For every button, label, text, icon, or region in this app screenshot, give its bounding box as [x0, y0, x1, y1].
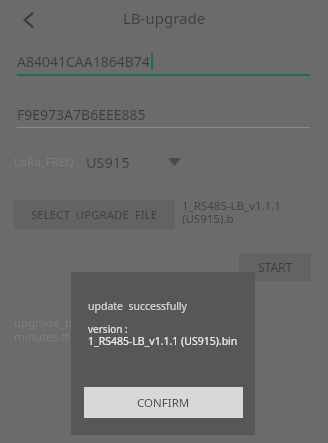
- staticText: START: [258, 259, 293, 275]
- staticText: 1_RS485-LB_v1.1.1 (US915).bin: [88, 334, 238, 348]
- button[interactable]: CONFIRM: [84, 387, 243, 418]
- staticText: SELECT UPGRADE FILE: [31, 207, 158, 223]
- staticText: update successfully: [88, 299, 187, 313]
- staticText: upgrade_time may take a few minutes ff t…: [14, 315, 328, 344]
- staticText: 1_RS485-LB_v1.1.1 (US915).b in: [182, 198, 328, 227]
- staticText: CONFIRM: [137, 395, 190, 411]
- staticText: LB-upgrade: [123, 8, 206, 28]
- staticText: US915: [86, 152, 130, 172]
- button[interactable]: START: [239, 253, 311, 281]
- button[interactable]: LoRa_FREQ: [14, 152, 181, 172]
- button[interactable]: SELECT UPGRADE FILE: [14, 200, 175, 229]
- staticText: A84041CAA1864B74: [17, 52, 150, 71]
- staticText: LoRa_FREQ: [14, 154, 75, 170]
- button[interactable]: Back: [12, 3, 46, 37]
- staticText: F9E973A7B6EEE885: [17, 105, 146, 124]
- staticText: version :: [88, 322, 128, 336]
